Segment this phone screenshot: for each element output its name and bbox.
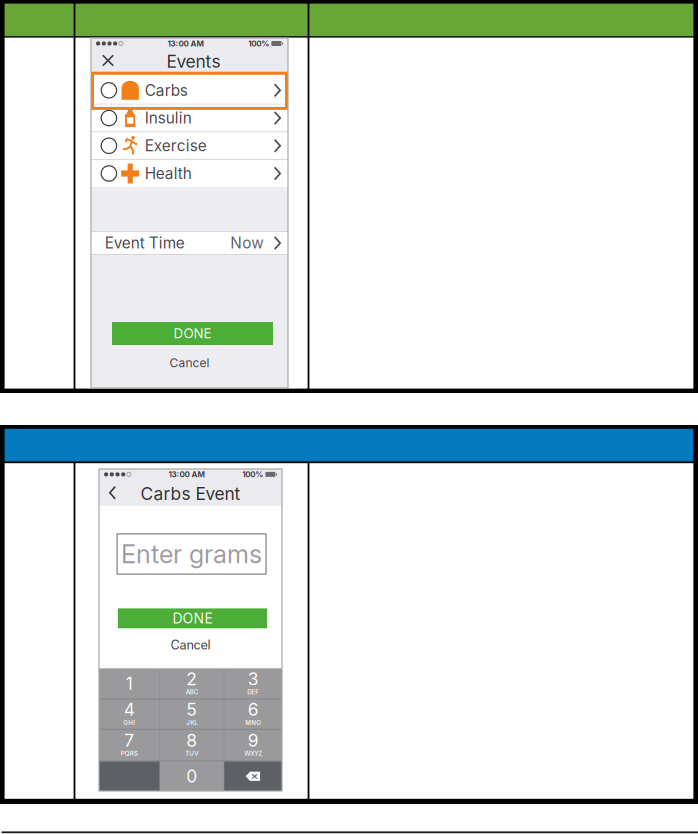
staticText: 9 bbox=[248, 730, 259, 751]
button[interactable]: 3 bbox=[224, 669, 282, 698]
staticText: 4 bbox=[124, 699, 135, 720]
button[interactable]: 6 bbox=[224, 700, 282, 729]
button[interactable]: Exercise bbox=[91, 132, 288, 159]
staticText: Carbs bbox=[145, 81, 188, 100]
staticText: ABC bbox=[186, 688, 198, 696]
staticText: Enter grams bbox=[121, 539, 262, 569]
button[interactable]: Blank bbox=[99, 762, 159, 791]
staticText: 2 bbox=[186, 668, 197, 689]
button[interactable]: DONE bbox=[118, 608, 267, 628]
staticText: 5 bbox=[186, 699, 197, 720]
button[interactable]: DONE bbox=[112, 322, 273, 345]
button[interactable]: 0 bbox=[160, 762, 224, 791]
button[interactable]: 1 bbox=[99, 669, 159, 698]
staticText: TUV bbox=[185, 750, 198, 757]
staticText: DONE bbox=[173, 325, 211, 341]
staticText: 13:00 AM bbox=[168, 39, 204, 48]
staticText: 1 bbox=[126, 673, 133, 694]
staticText: WXYZ bbox=[244, 750, 262, 757]
staticText: Health bbox=[145, 164, 192, 183]
staticText: Events bbox=[166, 51, 220, 72]
button[interactable]: Close bbox=[99, 51, 117, 69]
staticText: DONE bbox=[172, 610, 212, 627]
staticText: MNO bbox=[245, 719, 261, 726]
button[interactable]: 7 bbox=[99, 730, 159, 760]
button[interactable]: Cancel bbox=[99, 637, 282, 653]
button[interactable]: Insulin bbox=[91, 105, 288, 131]
staticText: 0 bbox=[186, 766, 197, 787]
staticText: Insulin bbox=[145, 109, 192, 127]
button[interactable]: 8 bbox=[160, 730, 224, 760]
staticText: Carbs Event bbox=[140, 483, 240, 504]
button[interactable]: Cancel bbox=[91, 356, 288, 370]
button[interactable]: Delete bbox=[224, 762, 282, 791]
staticText: GHI bbox=[123, 719, 135, 726]
button[interactable]: 9 bbox=[224, 730, 282, 760]
staticText: 8 bbox=[186, 730, 197, 751]
staticText: DEF bbox=[247, 688, 259, 696]
button[interactable]: Health bbox=[91, 160, 288, 187]
staticText: 7 bbox=[124, 730, 134, 751]
staticText: Cancel bbox=[169, 356, 209, 370]
button[interactable]: Event Time bbox=[91, 231, 288, 255]
staticText: Cancel bbox=[170, 637, 210, 653]
staticText: 100% bbox=[242, 470, 263, 479]
staticText: Exercise bbox=[145, 136, 207, 155]
staticText: 13:00 AM bbox=[169, 470, 205, 479]
button[interactable]: Back bbox=[106, 483, 119, 503]
staticText: JKL bbox=[186, 719, 197, 726]
staticText: Event Time bbox=[105, 234, 185, 252]
staticText: 3 bbox=[248, 668, 259, 689]
button[interactable]: Carbs bbox=[91, 77, 288, 104]
button[interactable]: 5 bbox=[160, 700, 224, 729]
staticText: 6 bbox=[248, 699, 259, 720]
button[interactable]: 4 bbox=[99, 700, 159, 729]
staticText: Now bbox=[230, 234, 264, 252]
staticText: PQRS bbox=[121, 750, 138, 757]
button[interactable]: 2 bbox=[160, 669, 224, 698]
staticText: 100% bbox=[248, 39, 269, 48]
